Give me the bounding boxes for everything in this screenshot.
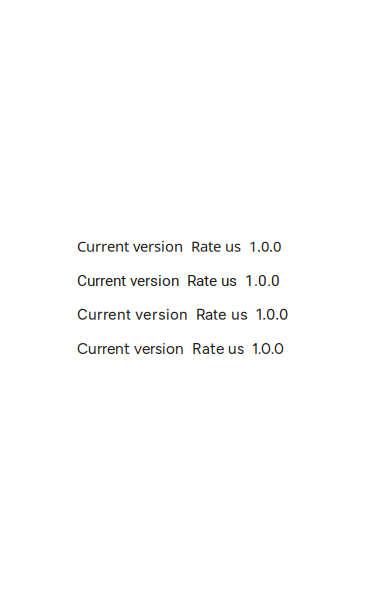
staticText: Current version Rate us 1.0.0 (77, 339, 284, 358)
staticText: Current version Rate us 1.0.0 (77, 272, 280, 290)
staticText: Current version Rate us 1.0.0 (77, 306, 288, 323)
staticText: Current version Rate us 1.0.0 (77, 236, 281, 256)
